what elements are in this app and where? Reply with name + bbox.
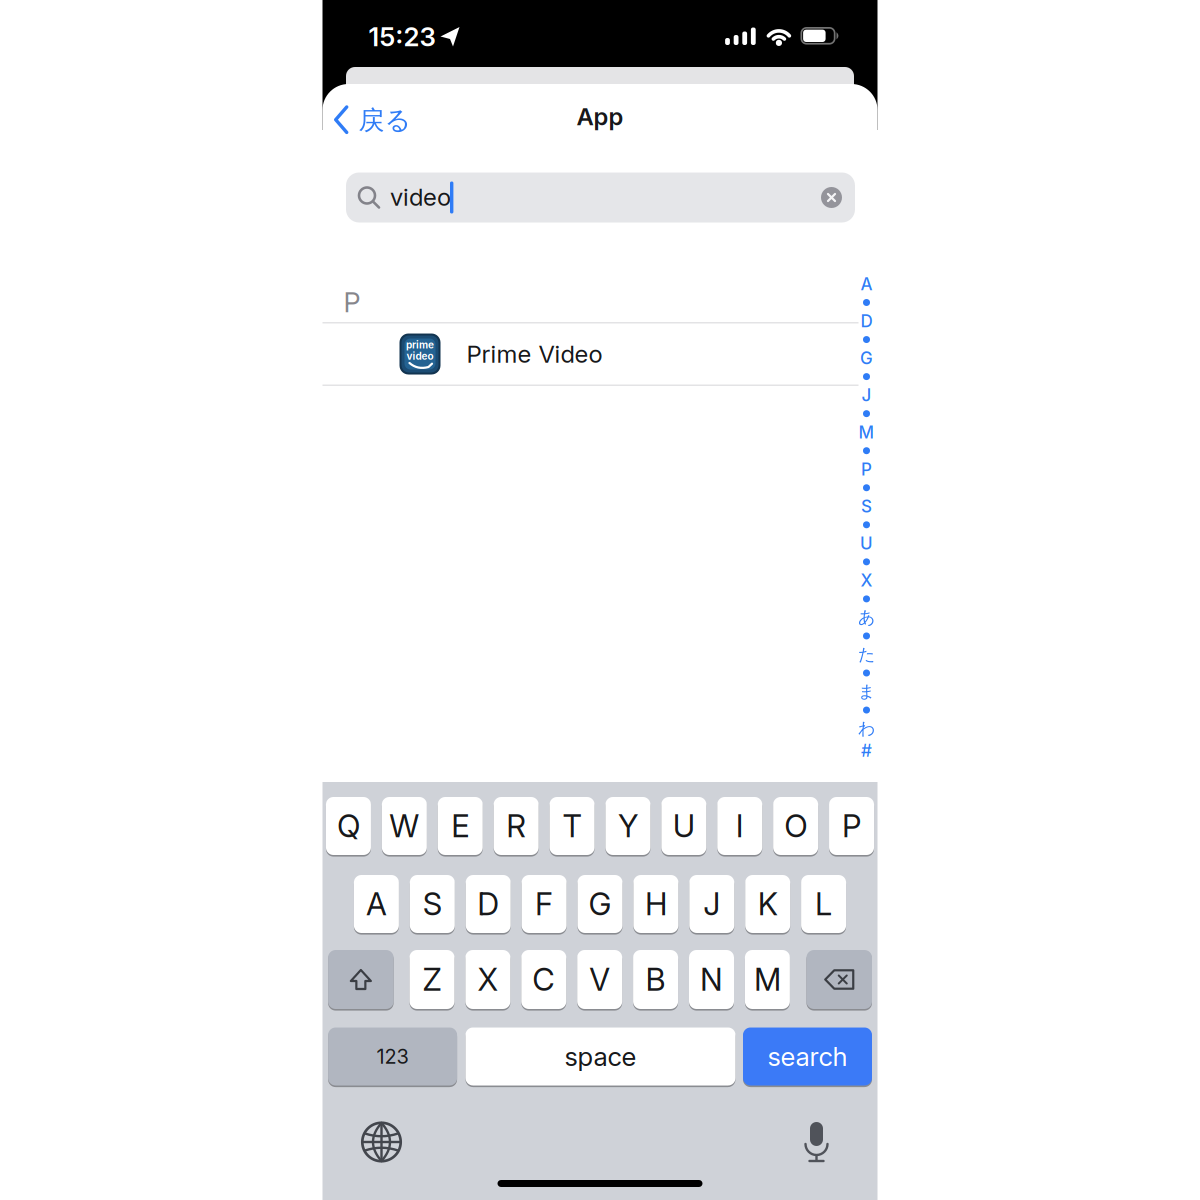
button[interactable]: A (354, 875, 399, 933)
staticText: H (645, 885, 667, 923)
staticText: D (477, 885, 499, 923)
button[interactable]: search (743, 1027, 872, 1085)
button[interactable]: J (689, 875, 734, 933)
staticText: B (646, 961, 666, 998)
staticText: J (703, 885, 720, 923)
staticText: S (861, 496, 872, 517)
staticText: G (588, 885, 611, 923)
button[interactable]: C (521, 950, 566, 1009)
staticText: F (535, 885, 553, 923)
staticText: space (564, 1041, 636, 1072)
staticText: V (589, 961, 610, 998)
button[interactable]: N (689, 950, 734, 1009)
staticText: Prime Video (466, 339, 602, 368)
staticText: C (532, 961, 555, 998)
staticText: M (858, 422, 874, 442)
staticText: X (860, 570, 872, 591)
button[interactable]: G (577, 875, 622, 933)
staticText: M (754, 961, 781, 998)
staticText: O (784, 807, 807, 845)
staticText: D (860, 311, 872, 331)
button[interactable]: P (829, 797, 874, 855)
staticText: た (858, 644, 875, 665)
staticText: あ (858, 607, 875, 628)
button[interactable]: V (577, 950, 622, 1009)
staticText: 15:23 (368, 21, 435, 52)
button[interactable]: space (465, 1027, 735, 1085)
button[interactable]: D (466, 875, 511, 933)
staticText: K (758, 885, 778, 923)
button[interactable]: H (633, 875, 678, 933)
button[interactable]: Q (326, 797, 371, 855)
staticText: search (767, 1041, 847, 1072)
button[interactable]: X (465, 950, 510, 1009)
staticText: video (390, 182, 451, 211)
button[interactable]: Delete (806, 950, 872, 1009)
button[interactable]: U (661, 797, 706, 855)
button[interactable]: T (549, 797, 594, 855)
staticText: U (860, 533, 873, 554)
staticText: L (815, 885, 832, 923)
button[interactable]: Next keyboard (360, 1121, 402, 1163)
staticText: G (860, 348, 873, 368)
staticText: A (366, 885, 387, 923)
staticText: I (736, 807, 744, 845)
staticText: # (861, 740, 872, 761)
staticText: P (861, 459, 872, 480)
button[interactable]: R (494, 797, 539, 855)
button[interactable]: Y (605, 797, 650, 855)
staticText: R (506, 807, 526, 845)
staticText: ま (858, 681, 875, 702)
button[interactable]: S (410, 875, 455, 933)
staticText: わ (858, 718, 875, 739)
staticText: P (343, 286, 360, 319)
button[interactable]: 123 (328, 1027, 457, 1085)
staticText: J (861, 385, 871, 405)
staticText: X (477, 961, 498, 998)
button[interactable]: B (633, 950, 678, 1009)
button[interactable]: E (438, 797, 483, 855)
staticText: U (673, 807, 695, 845)
button[interactable]: F (522, 875, 567, 933)
staticText: Q (337, 807, 360, 845)
button[interactable]: W (382, 797, 427, 855)
staticText: W (389, 807, 419, 845)
staticText: A (860, 274, 872, 294)
staticText: P (842, 807, 861, 845)
button[interactable]: prime (322, 323, 935, 384)
staticText: N (700, 961, 723, 998)
staticText: 123 (377, 1044, 409, 1069)
staticText: prime (406, 339, 434, 351)
staticText: video (406, 350, 433, 362)
button[interactable]: Section index (854, 272, 878, 775)
staticText: Z (422, 961, 441, 998)
button[interactable]: Clear text (821, 187, 842, 208)
button[interactable]: Z (409, 950, 454, 1009)
button[interactable]: Dictate (803, 1121, 829, 1163)
staticText: App (576, 102, 623, 131)
staticText: 戻る (358, 104, 411, 137)
staticText: S (423, 885, 442, 923)
button[interactable]: Shift (328, 950, 394, 1009)
staticText: E (451, 807, 469, 845)
staticText: Y (618, 807, 638, 845)
button[interactable]: M (745, 950, 790, 1009)
button[interactable]: K (745, 875, 790, 933)
button[interactable]: Search (346, 172, 855, 222)
button[interactable]: I (717, 797, 762, 855)
button[interactable]: L (801, 875, 846, 933)
staticText: T (562, 807, 581, 845)
button[interactable]: O (773, 797, 818, 855)
button[interactable]: Back (322, 85, 414, 135)
